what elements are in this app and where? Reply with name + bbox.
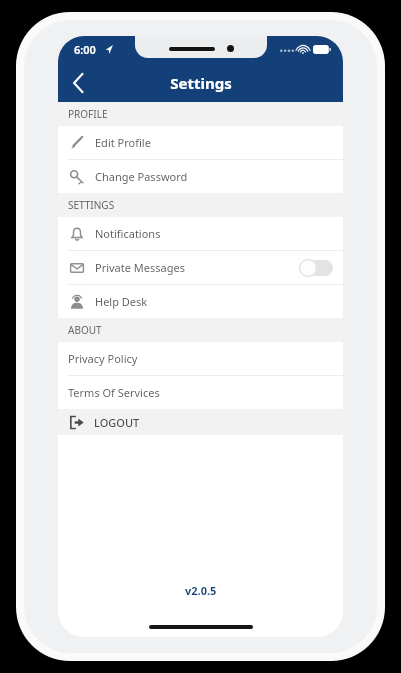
button[interactable]: Back	[58, 64, 98, 102]
staticText: LOGOUT	[94, 415, 140, 430]
staticText: Privacy Policy	[68, 351, 138, 366]
staticText: Settings	[170, 73, 232, 93]
staticText: PROFILE	[68, 107, 108, 121]
button[interactable]: Private Messages toggle	[299, 259, 333, 277]
button[interactable]: Privacy Policy	[58, 342, 343, 375]
staticText: Help Desk	[95, 294, 148, 309]
staticText: Notifications	[95, 226, 161, 241]
staticText: SETTINGS	[68, 198, 115, 212]
button[interactable]: Change Password	[58, 160, 343, 193]
button[interactable]: Private Messages	[58, 251, 343, 284]
staticText: ABOUT	[68, 323, 102, 337]
staticText: Change Password	[95, 169, 188, 184]
staticText: Private Messages	[95, 260, 185, 275]
staticText: Edit Profile	[95, 135, 151, 150]
staticText: v2.0.5	[185, 583, 217, 598]
staticText: Terms Of Services	[68, 385, 160, 400]
button[interactable]: LOGOUT	[58, 409, 343, 435]
button[interactable]: Edit Profile	[58, 126, 343, 159]
button[interactable]: Help Desk	[58, 285, 343, 318]
button[interactable]: Notifications	[58, 217, 343, 250]
staticText: 6:00	[74, 42, 96, 57]
button[interactable]: Terms Of Services	[58, 376, 343, 409]
